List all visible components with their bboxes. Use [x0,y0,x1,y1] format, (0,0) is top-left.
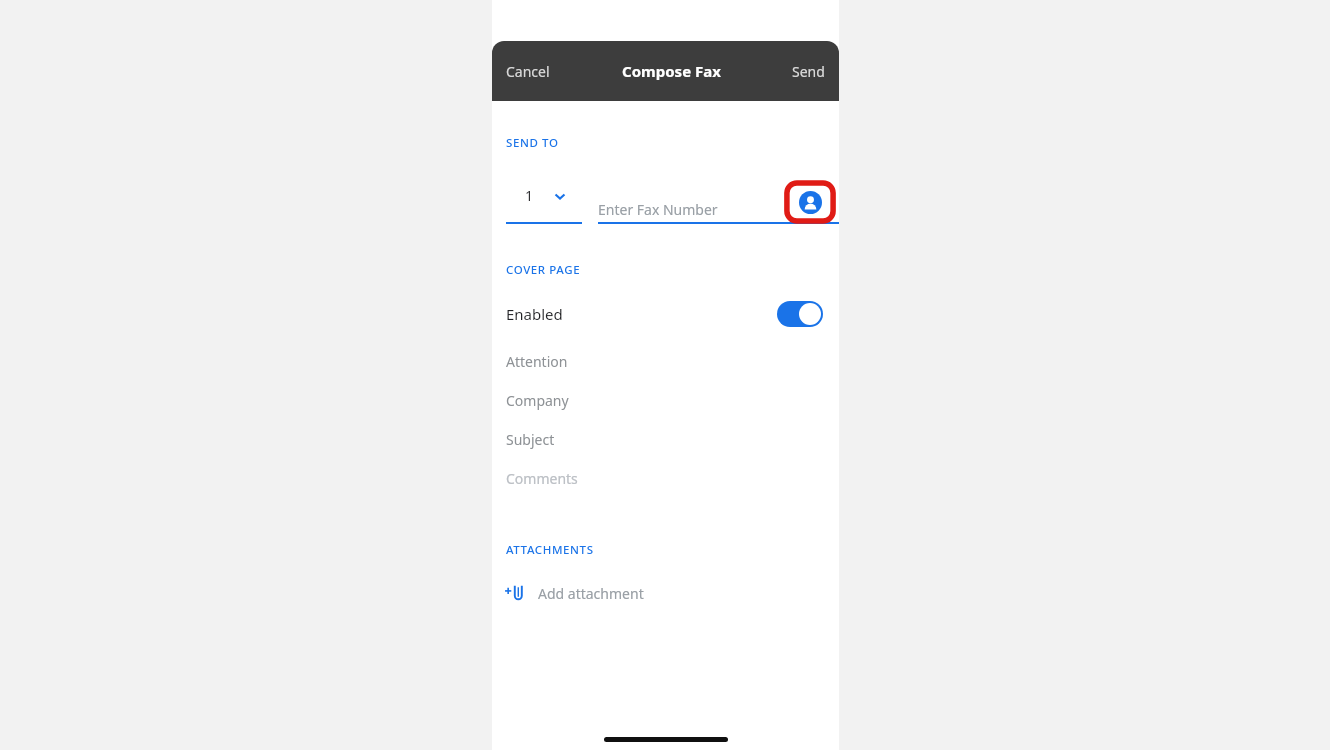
staticText: COVER PAGE [506,262,581,278]
staticText: Company [506,391,569,410]
button[interactable]: Subject [492,420,839,459]
staticText: Attention [506,352,568,371]
button[interactable]: 1 [506,186,582,232]
button[interactable]: Add attachment [492,574,839,612]
staticText: Cancel [506,62,550,81]
button[interactable]: Company [492,381,839,420]
staticText: Add attachment [538,584,644,603]
staticText: Subject [506,430,555,449]
staticText: SEND TO [506,135,559,151]
staticText: ATTACHMENTS [506,542,594,558]
button[interactable]: Attention [492,342,839,381]
button[interactable]: Enabled [492,294,839,334]
staticText: Comments [506,469,578,488]
staticText: 1 [525,186,534,205]
button[interactable]: Comments [492,459,839,498]
staticText: Compose Fax [622,61,721,81]
staticText: Send [792,62,825,81]
button[interactable]: Enter Fax Number [598,186,839,232]
staticText: Enter Fax Number [598,200,718,219]
button[interactable]: Choose contact [783,179,837,225]
button[interactable]: Cancel [492,56,558,87]
button[interactable]: Send [784,56,839,87]
staticText: Enabled [506,304,563,324]
